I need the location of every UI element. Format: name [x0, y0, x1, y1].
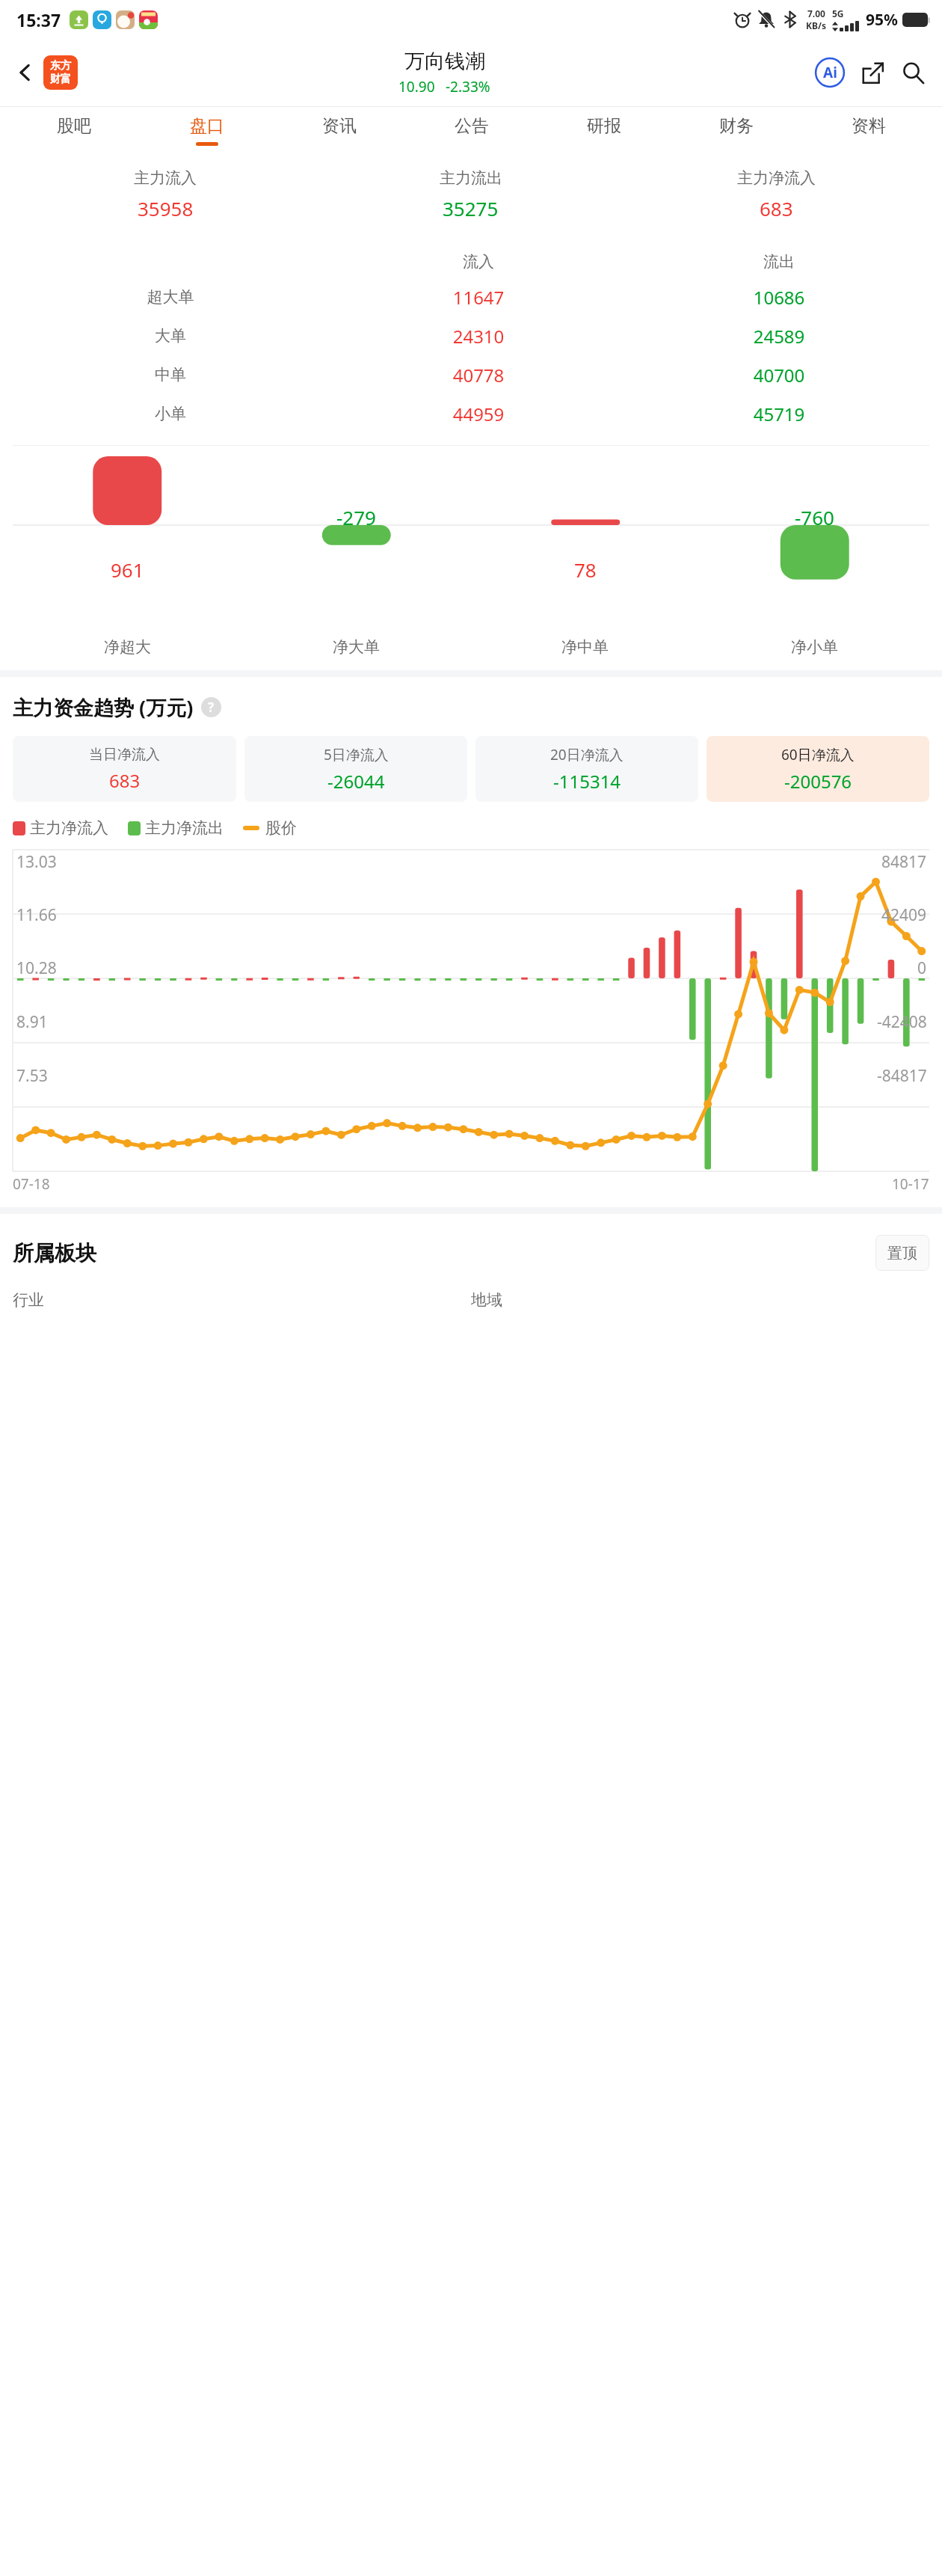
staticText: 主力净流出: [145, 818, 224, 838]
button[interactable]: AI assistant: [812, 55, 848, 91]
button[interactable]: Search: [896, 55, 930, 90]
staticText: 净大单: [333, 637, 380, 657]
staticText: 5G: [832, 7, 844, 19]
button[interactable]: 资料: [802, 107, 935, 153]
staticText: 主力净流入: [30, 818, 108, 838]
button[interactable]: 股吧: [7, 107, 141, 153]
staticText: 财务: [719, 115, 754, 137]
staticText: 超大单: [13, 287, 328, 307]
button[interactable]: 60日净流入: [706, 736, 929, 802]
staticText: 45719: [629, 402, 929, 426]
staticText: 资讯: [322, 115, 357, 137]
staticText: 0: [917, 957, 927, 979]
staticText: -279: [336, 504, 376, 530]
staticText: 40778: [328, 363, 629, 387]
staticText: 东方: [50, 59, 71, 73]
staticText: ?: [208, 699, 215, 716]
button[interactable]: 5日净流入: [244, 736, 467, 802]
staticText: 小单: [13, 404, 328, 423]
staticText: 683: [109, 768, 141, 793]
button[interactable]: 资讯: [273, 107, 405, 153]
staticText: 股价: [265, 818, 297, 838]
staticText: Ai: [823, 63, 837, 82]
staticText: 78: [574, 556, 597, 583]
button[interactable]: 研报: [538, 107, 670, 153]
staticText: 7.53: [16, 1065, 48, 1087]
button[interactable]: 东方财富: [43, 55, 78, 90]
staticText: 15:37: [16, 8, 61, 31]
staticText: 13.03: [16, 851, 57, 873]
staticText: 961: [111, 556, 144, 583]
staticText: 盘口: [190, 115, 224, 137]
staticText: 35958: [138, 195, 194, 221]
staticText: 研报: [587, 115, 621, 137]
staticText: -26044: [327, 769, 385, 794]
staticText: 20日净流入: [550, 745, 624, 764]
staticText: 主力资金趋势 (万元): [13, 693, 194, 721]
staticText: 44959: [328, 402, 629, 426]
button[interactable]: Share: [855, 55, 890, 90]
staticText: 主力流入: [134, 168, 197, 188]
staticText: 大单: [13, 326, 328, 346]
staticText: 地域: [471, 1290, 929, 1310]
staticText: 财富: [50, 73, 71, 86]
staticText: 10.90: [398, 77, 435, 96]
button[interactable]: 20日净流入: [475, 736, 698, 802]
staticText: 5日净流入: [324, 745, 389, 764]
staticText: 置顶: [887, 1244, 917, 1263]
staticText: 股吧: [57, 115, 91, 137]
staticText: 35275: [443, 195, 499, 221]
staticText: -42408: [877, 1011, 927, 1033]
staticText: 资料: [852, 115, 886, 137]
button[interactable]: Back: [9, 56, 42, 89]
staticText: 24589: [629, 324, 929, 349]
staticText: 7.00: [807, 7, 825, 19]
staticText: 40700: [629, 363, 929, 387]
staticText: 流出: [629, 252, 929, 272]
staticText: 84817: [881, 851, 927, 873]
staticText: -200576: [784, 769, 852, 794]
staticText: -760: [795, 504, 834, 530]
staticText: -115314: [553, 769, 621, 794]
staticText: 42409: [881, 904, 927, 926]
staticText: -2.33%: [446, 77, 490, 96]
staticText: 8.91: [16, 1011, 48, 1033]
staticText: 24310: [328, 324, 629, 349]
staticText: 中单: [13, 365, 328, 384]
staticText: 当日净流入: [89, 746, 160, 764]
staticText: 07-18: [13, 1174, 50, 1194]
staticText: 流入: [328, 252, 629, 272]
staticText: 10686: [629, 285, 929, 310]
staticText: 11647: [328, 285, 629, 310]
staticText: 净超大: [104, 637, 151, 657]
staticText: 95%: [866, 9, 898, 31]
staticText: 主力流出: [440, 168, 502, 188]
staticText: 行业: [13, 1290, 471, 1310]
staticText: 万向钱潮: [404, 49, 485, 74]
staticText: 主力净流入: [737, 168, 816, 188]
staticText: -84817: [877, 1065, 927, 1087]
button[interactable]: 公告: [405, 107, 538, 153]
staticText: KB/s: [806, 19, 826, 31]
staticText: 683: [760, 195, 793, 221]
staticText: 净小单: [791, 637, 838, 657]
button[interactable]: Help: [201, 697, 221, 717]
staticText: 11.66: [16, 904, 57, 926]
staticText: 公告: [455, 115, 489, 137]
staticText: 所属板块: [13, 1240, 96, 1266]
button[interactable]: 置顶: [875, 1235, 929, 1271]
staticText: 净中单: [561, 637, 609, 657]
button[interactable]: 当日净流入: [13, 736, 236, 802]
staticText: 10-17: [892, 1174, 929, 1194]
button[interactable]: 财务: [670, 107, 802, 153]
staticText: 10.28: [16, 957, 57, 979]
button[interactable]: 盘口: [141, 107, 273, 153]
staticText: 60日净流入: [781, 745, 855, 764]
